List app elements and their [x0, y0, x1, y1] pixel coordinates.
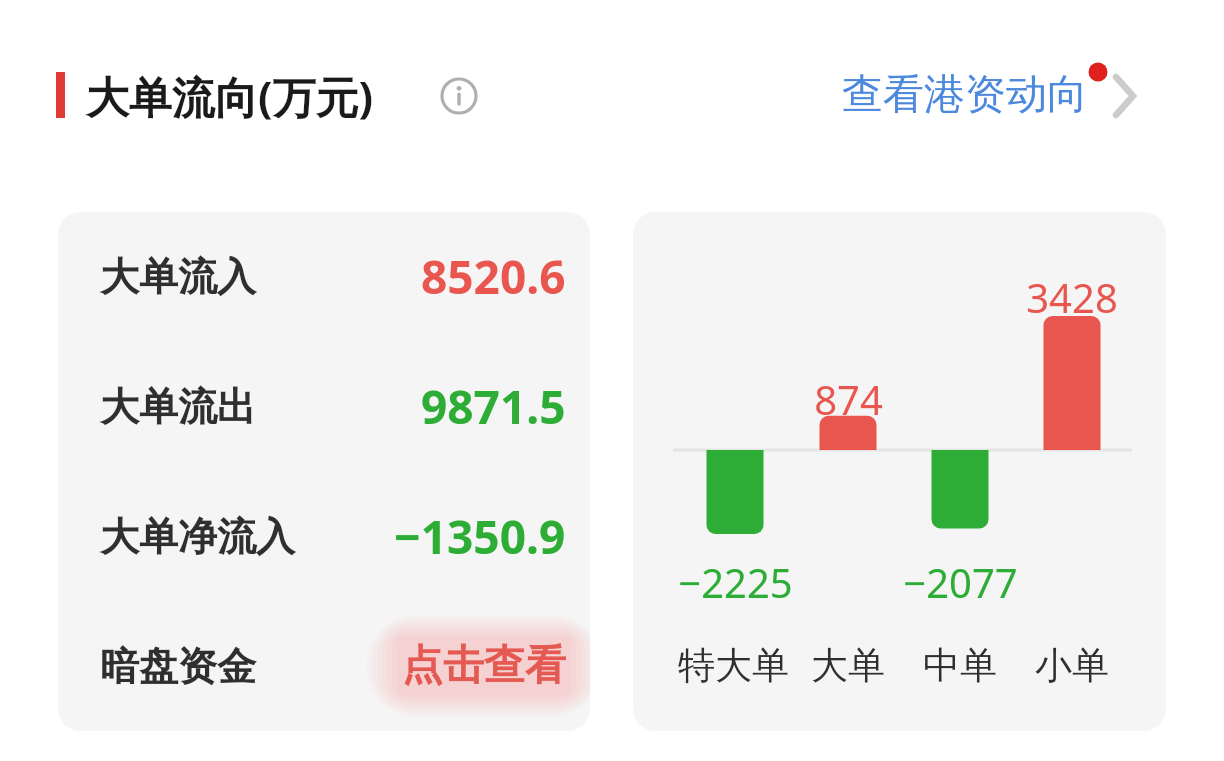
- staticText: 大单: [811, 642, 885, 689]
- staticText: −2077: [903, 555, 1018, 609]
- staticText: 查看港资动向: [842, 69, 1088, 121]
- button[interactable]: 大单流入: [58, 212, 590, 731]
- staticText: 大单流入: [100, 252, 256, 301]
- staticText: 大单流出: [100, 382, 256, 431]
- staticText: 中单: [923, 642, 997, 689]
- staticText: 874: [814, 372, 883, 426]
- staticText: 3428: [1026, 270, 1118, 324]
- staticText: 大单净流入: [100, 512, 295, 561]
- staticText: 特大单: [678, 642, 789, 689]
- staticText: 8520.6: [421, 245, 566, 308]
- staticText: 点击查看: [402, 640, 566, 692]
- staticText: 暗盘资金: [100, 642, 256, 691]
- staticText: −1350.9: [394, 505, 566, 568]
- staticText: 大单流向(万元): [86, 67, 374, 126]
- button[interactable]: 查看港资动向: [842, 52, 1146, 138]
- button[interactable]: 点击查看: [402, 640, 566, 692]
- button[interactable]: Information: [437, 74, 481, 118]
- staticText: 小单: [1035, 642, 1109, 689]
- button[interactable]: 3428: [633, 212, 1166, 731]
- staticText: −2225: [678, 555, 793, 609]
- staticText: 9871.5: [421, 375, 566, 438]
